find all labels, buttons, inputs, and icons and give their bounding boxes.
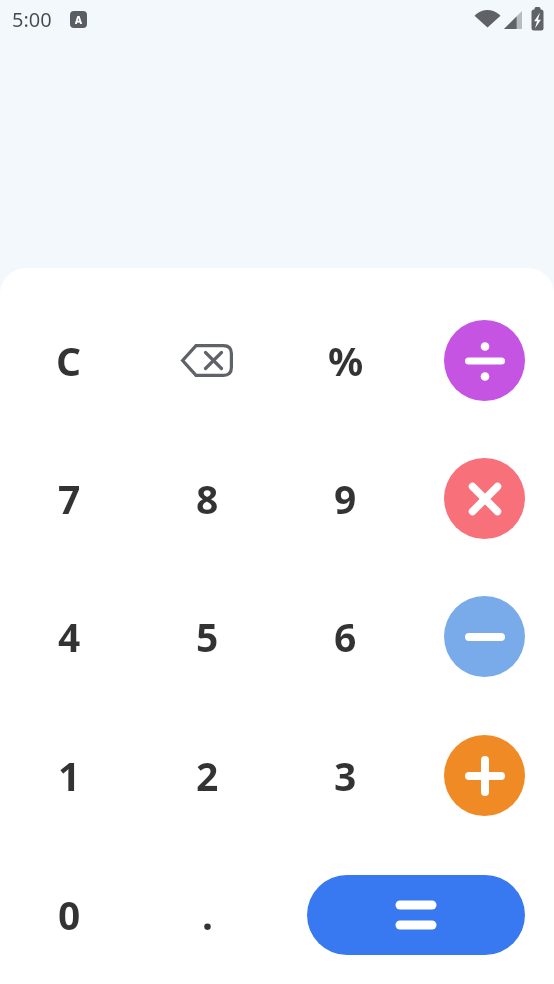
button[interactable]: %	[276, 291, 415, 429]
button[interactable]: 8	[138, 429, 276, 567]
button[interactable]: 3	[276, 706, 415, 845]
staticText: 9	[334, 472, 357, 525]
staticText: .	[202, 888, 213, 941]
staticText: 3	[334, 749, 357, 802]
button[interactable]: 4	[0, 567, 138, 706]
staticText: 6	[334, 610, 357, 663]
staticText: C	[56, 334, 82, 387]
staticText: %	[328, 334, 364, 387]
staticText: 1	[58, 749, 81, 802]
staticText: 2	[196, 749, 219, 802]
button[interactable]	[138, 291, 276, 429]
button[interactable]	[277, 845, 554, 984]
button[interactable]	[415, 567, 554, 706]
staticText: A	[75, 13, 82, 27]
button[interactable]: 6	[276, 567, 415, 706]
staticText: 7	[58, 472, 81, 525]
button[interactable]: 2	[138, 706, 276, 845]
button[interactable]: .	[138, 845, 277, 984]
button[interactable]	[415, 291, 554, 429]
staticText: 0	[58, 888, 81, 941]
button[interactable]: 7	[0, 429, 138, 567]
staticText: 5	[196, 610, 219, 663]
staticText: 8	[196, 472, 219, 525]
button[interactable]	[415, 429, 554, 567]
button[interactable]	[415, 706, 554, 845]
button[interactable]: 9	[276, 429, 415, 567]
button[interactable]: C	[0, 291, 138, 429]
button[interactable]: 0	[0, 845, 138, 984]
button[interactable]: 1	[0, 706, 138, 845]
button[interactable]: 5	[138, 567, 276, 706]
staticText: 4	[58, 610, 81, 663]
staticText: 5:00	[12, 6, 52, 33]
